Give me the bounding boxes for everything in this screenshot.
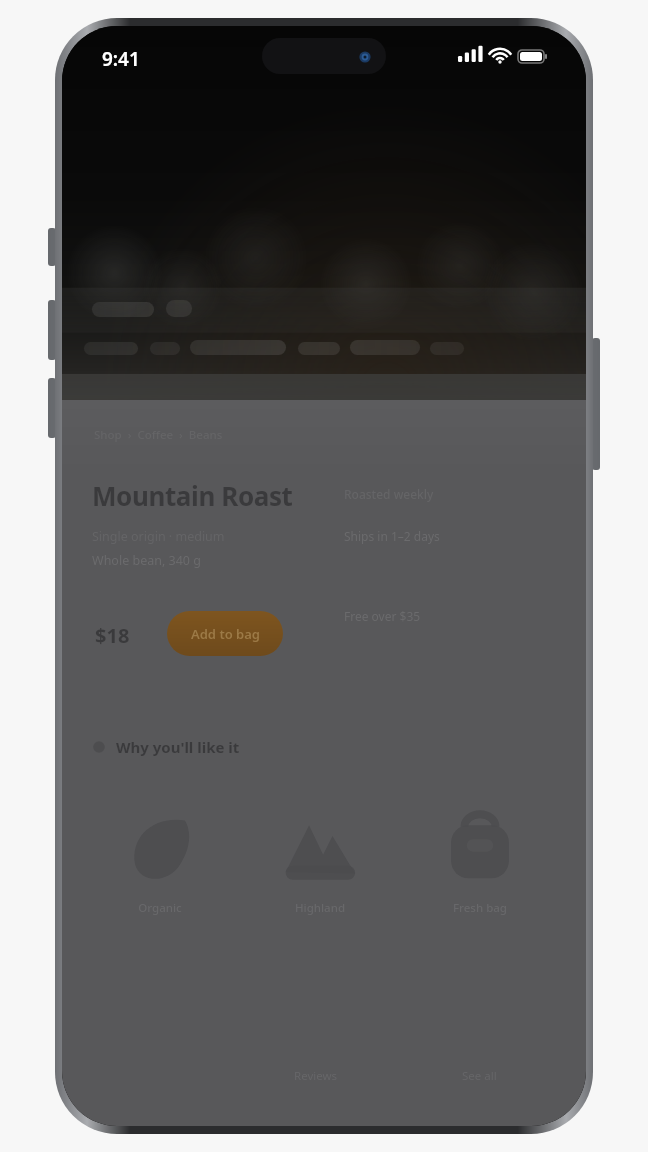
staticText: See all [462,1068,497,1084]
staticText: Ships in 1–2 days [344,528,440,544]
staticText: Mountain Roast [92,478,293,513]
staticText: Fresh bag [414,900,546,916]
staticText: 9:41 [102,46,140,72]
button[interactable]: Organic [94,800,226,980]
staticText: Reviews [294,1068,338,1084]
staticText: Highland [254,900,386,916]
staticText: Organic [94,900,226,916]
staticText: Whole bean, 340 g [92,552,201,569]
staticText: Single origin · medium [92,528,225,545]
button[interactable]: Add to bag [167,611,283,656]
button[interactable]: Highland [254,800,386,980]
staticText: Add to bag [191,625,260,643]
staticText: $18 [95,622,130,649]
staticText: Roasted weekly [344,486,434,502]
staticText: Why you'll like it [116,737,240,757]
staticText: Free over $35 [344,608,421,624]
button[interactable]: Fresh bag [414,800,546,980]
